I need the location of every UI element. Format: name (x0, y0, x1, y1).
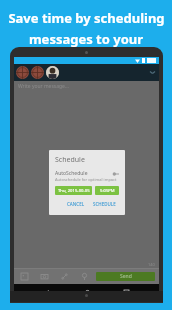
button[interactable]: Recipient avatar (31, 66, 44, 79)
button[interactable]: Recents (119, 285, 133, 299)
staticText: Send (120, 273, 132, 280)
staticText: Save time by scheduling (8, 9, 165, 27)
button[interactable]: SCHEDULE (90, 200, 119, 208)
staticText: Autoschedule for optimal impact (55, 177, 117, 182)
button[interactable]: Recipient avatar (14, 64, 159, 81)
button[interactable]: Home (80, 285, 94, 299)
button[interactable]: AutoSchedule (55, 170, 119, 177)
button[interactable]: Attach link (54, 269, 74, 284)
staticText: SCHEDULE (93, 201, 116, 207)
button[interactable]: Thu, 2015-00-05 (55, 186, 92, 195)
staticText: messages to your followers (4, 30, 168, 66)
staticText: Thu, 2015-00-05 (58, 188, 90, 194)
button[interactable]: 5:05PM (95, 186, 119, 195)
staticText: AutoSchedule (55, 170, 113, 177)
button[interactable]: Recipient avatar (16, 66, 29, 79)
button[interactable]: Camera (34, 269, 54, 284)
staticText: Write your message... (18, 83, 69, 90)
staticText: Schedule (55, 155, 85, 165)
button[interactable]: Send (96, 272, 155, 281)
button[interactable]: Add image (14, 269, 34, 284)
staticText: 5:05PM (100, 188, 115, 194)
staticText: 140 (148, 262, 155, 267)
button[interactable]: Location (74, 269, 94, 284)
button[interactable]: CANCEL (64, 200, 88, 208)
staticText: CANCEL (67, 201, 85, 207)
other: Expand (150, 70, 155, 75)
button[interactable]: Recipient avatar (46, 66, 59, 79)
button[interactable]: Back (40, 285, 54, 299)
